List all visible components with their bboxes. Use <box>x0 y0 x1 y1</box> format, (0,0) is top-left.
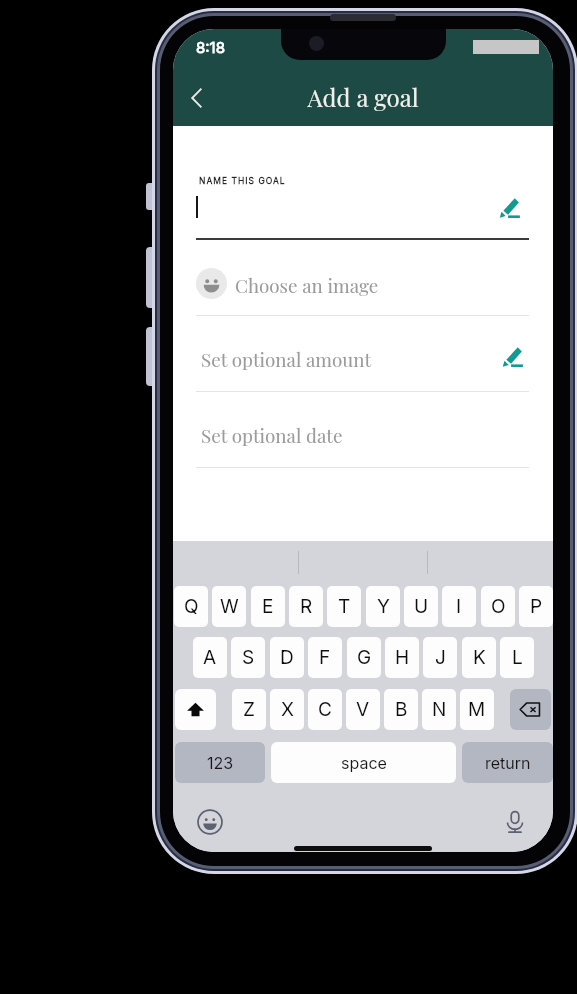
button[interactable]: C <box>308 689 342 730</box>
button[interactable]: Edit <box>498 197 521 220</box>
staticText: W <box>220 595 239 618</box>
staticText: F <box>319 646 331 669</box>
staticText: 123 <box>207 753 234 772</box>
button[interactable]: space <box>271 742 456 783</box>
button[interactable]: D <box>270 637 304 678</box>
staticText: L <box>512 646 523 669</box>
button[interactable]: L <box>500 637 534 678</box>
button[interactable]: Q <box>174 586 208 627</box>
button[interactable]: N <box>422 689 456 730</box>
button[interactable]: V <box>346 689 380 730</box>
button[interactable]: Back <box>175 76 219 120</box>
button[interactable]: Backspace <box>510 689 551 730</box>
staticText: U <box>414 595 429 618</box>
staticText: Set optional amount <box>201 347 372 372</box>
staticText: R <box>300 595 313 618</box>
button[interactable]: W <box>212 586 246 627</box>
staticText: C <box>318 698 332 721</box>
button[interactable]: I <box>442 586 476 627</box>
button[interactable]: M <box>460 689 494 730</box>
staticText: N <box>432 698 447 721</box>
staticText: E <box>262 595 274 618</box>
button[interactable]: B <box>384 689 418 730</box>
staticText: V <box>356 698 370 721</box>
button[interactable]: K <box>462 637 496 678</box>
button[interactable]: return <box>462 742 553 783</box>
staticText: space <box>341 753 387 772</box>
staticText: Z <box>243 698 255 721</box>
button[interactable]: J <box>423 637 457 678</box>
staticText: M <box>468 698 486 721</box>
button[interactable]: Dictate <box>502 809 528 835</box>
button[interactable]: Shift <box>175 689 216 730</box>
staticText: O <box>491 595 506 618</box>
staticText: X <box>281 698 294 721</box>
button[interactable]: R <box>289 586 323 627</box>
staticText: 8:18 <box>196 38 225 56</box>
staticText: Choose an image <box>235 273 379 298</box>
button[interactable]: Set optional amount <box>196 316 529 391</box>
button[interactable]: Y <box>366 586 400 627</box>
staticText: B <box>395 698 408 721</box>
button[interactable]: P <box>519 586 553 627</box>
staticText: Set optional date <box>201 423 343 448</box>
button[interactable]: Z <box>232 689 266 730</box>
staticText: return <box>485 753 531 772</box>
button[interactable]: H <box>385 637 419 678</box>
button[interactable]: S <box>231 637 265 678</box>
staticText: Q <box>184 595 199 618</box>
staticText: J <box>435 646 446 669</box>
staticText: I <box>456 595 462 618</box>
staticText: T <box>338 595 351 618</box>
staticText: Add a goal <box>173 81 553 113</box>
staticText: H <box>395 646 410 669</box>
staticText: D <box>280 646 294 669</box>
staticText: P <box>530 595 543 618</box>
button[interactable]: T <box>327 586 361 627</box>
button[interactable]: U <box>404 586 438 627</box>
button[interactable]: E <box>251 586 285 627</box>
button[interactable]: Emoji keyboard <box>197 809 223 835</box>
button[interactable]: Set optional date <box>196 392 529 467</box>
staticText: G <box>357 646 372 669</box>
staticText: S <box>242 646 255 669</box>
staticText: NAME THIS GOAL <box>199 176 286 186</box>
button[interactable]: 123 <box>175 742 265 783</box>
button[interactable]: F <box>308 637 342 678</box>
staticText: A <box>203 646 217 669</box>
staticText: K <box>473 646 486 669</box>
button[interactable]: Edit <box>501 346 524 369</box>
button[interactable]: O <box>481 586 515 627</box>
button[interactable]: G <box>347 637 381 678</box>
button[interactable]: Choose an image <box>196 242 529 315</box>
button[interactable]: X <box>270 689 304 730</box>
staticText: Y <box>377 595 390 618</box>
button[interactable]: A <box>193 637 227 678</box>
